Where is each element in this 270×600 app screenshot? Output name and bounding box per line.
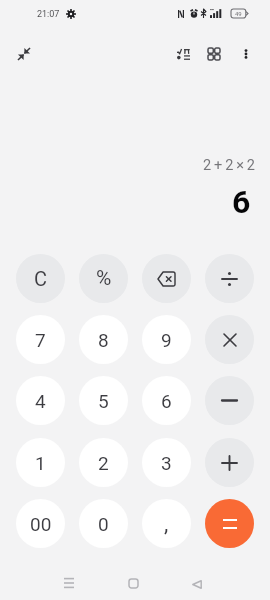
button[interactable]: 00 xyxy=(16,499,65,548)
button[interactable]: Collapse xyxy=(8,38,40,70)
staticText: , xyxy=(164,511,169,537)
other: Minus xyxy=(222,399,237,402)
other: Divide xyxy=(222,272,237,286)
button[interactable]: C xyxy=(16,254,65,303)
button[interactable]: Recents xyxy=(54,568,84,598)
staticText: % xyxy=(96,266,112,291)
button[interactable]: % xyxy=(79,254,128,303)
button[interactable]: 1 xyxy=(16,438,65,487)
button[interactable]: Home xyxy=(118,568,148,598)
button[interactable]: 3 xyxy=(142,438,191,487)
button[interactable]: 7 xyxy=(16,315,65,364)
other: Backspace xyxy=(158,272,175,286)
staticText: 0 xyxy=(98,513,109,535)
staticText: 2+2×2 xyxy=(203,157,258,174)
staticText: 8 xyxy=(98,329,109,351)
staticText: 7 xyxy=(35,329,46,351)
other: Plus xyxy=(222,456,237,470)
other: Equals xyxy=(223,519,237,529)
staticText: 6 xyxy=(161,390,172,412)
staticText: 9 xyxy=(161,329,172,351)
button[interactable]: Minus xyxy=(205,376,254,425)
button[interactable]: 4 xyxy=(16,376,65,425)
button[interactable]: Scientific mode xyxy=(167,38,199,70)
button[interactable]: Backspace xyxy=(142,254,191,303)
staticText: 3 xyxy=(161,452,172,474)
button[interactable]: 0 xyxy=(79,499,128,548)
button[interactable]: 6 xyxy=(142,376,191,425)
button[interactable]: Back xyxy=(182,569,212,599)
staticText: 4 xyxy=(35,390,46,412)
staticText: C xyxy=(34,267,48,290)
staticText: 21:07 xyxy=(37,9,60,20)
button[interactable]: Plus xyxy=(205,438,254,487)
button[interactable]: 8 xyxy=(79,315,128,364)
staticText: 00 xyxy=(30,513,52,535)
button[interactable]: 5 xyxy=(79,376,128,425)
button[interactable]: Divide xyxy=(205,254,254,303)
button[interactable]: 9 xyxy=(142,315,191,364)
other: Multiply xyxy=(224,334,236,346)
staticText: 2 xyxy=(98,452,109,474)
staticText: 6 xyxy=(232,183,251,217)
staticText: 5 xyxy=(98,390,109,412)
staticText: 1 xyxy=(35,452,46,474)
button[interactable]: Keypad layout xyxy=(198,38,230,70)
staticText: 49 xyxy=(235,10,242,17)
button[interactable]: More options xyxy=(230,38,262,70)
button[interactable]: , xyxy=(142,499,191,548)
button[interactable]: 2 xyxy=(79,438,128,487)
button[interactable]: Multiply xyxy=(205,315,254,364)
button[interactable]: Equals xyxy=(205,499,254,548)
